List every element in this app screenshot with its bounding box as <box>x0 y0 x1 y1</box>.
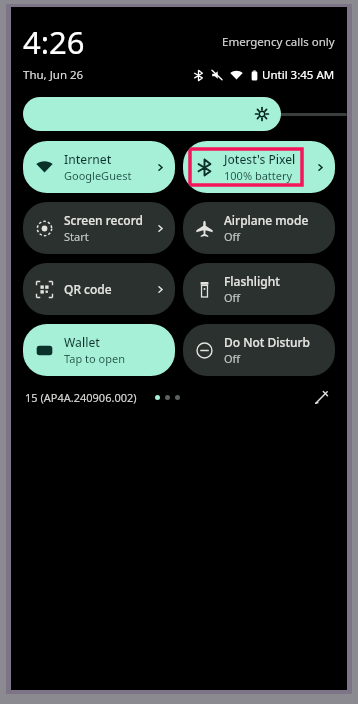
staticText: GoogleGuest <box>64 168 132 183</box>
button[interactable]: QR code scanner <box>23 263 175 315</box>
staticText: Off <box>224 229 241 244</box>
button[interactable]: Edit tiles <box>309 385 333 409</box>
staticText: QR code scanner <box>64 281 153 297</box>
button[interactable]: Wallet <box>23 324 175 376</box>
staticText: Until 3:45 AM <box>262 67 335 83</box>
staticText: Off <box>224 290 241 305</box>
button[interactable]: Do Not Disturb <box>183 324 335 376</box>
staticText: Jotest's Pixel <box>224 151 296 167</box>
staticText: Start <box>64 229 89 244</box>
staticText: Do Not Disturb <box>224 334 311 350</box>
staticText: Thu, Jun 26 <box>23 67 84 83</box>
staticText: Tap to open <box>64 351 125 366</box>
button[interactable]: Airplane mode <box>183 202 335 254</box>
staticText: 15 (AP4A.240906.002) <box>25 390 137 405</box>
button[interactable]: 4:26 <box>23 21 85 63</box>
staticText: Wallet <box>64 334 100 350</box>
staticText: 100% battery <box>224 168 293 183</box>
staticText: Off <box>224 351 241 366</box>
button[interactable]: Internet <box>23 141 175 193</box>
button[interactable]: Screen record <box>23 202 175 254</box>
button[interactable]: Jotest's Pixel <box>183 141 335 193</box>
staticText: Airplane mode <box>224 212 309 228</box>
button[interactable]: Flashlight <box>183 263 335 315</box>
staticText: Internet <box>64 151 112 167</box>
button[interactable]: Brightness <box>23 97 335 131</box>
staticText: Emergency calls only <box>222 34 335 50</box>
staticText: Flashlight <box>224 273 280 289</box>
staticText: Screen record <box>64 212 143 228</box>
